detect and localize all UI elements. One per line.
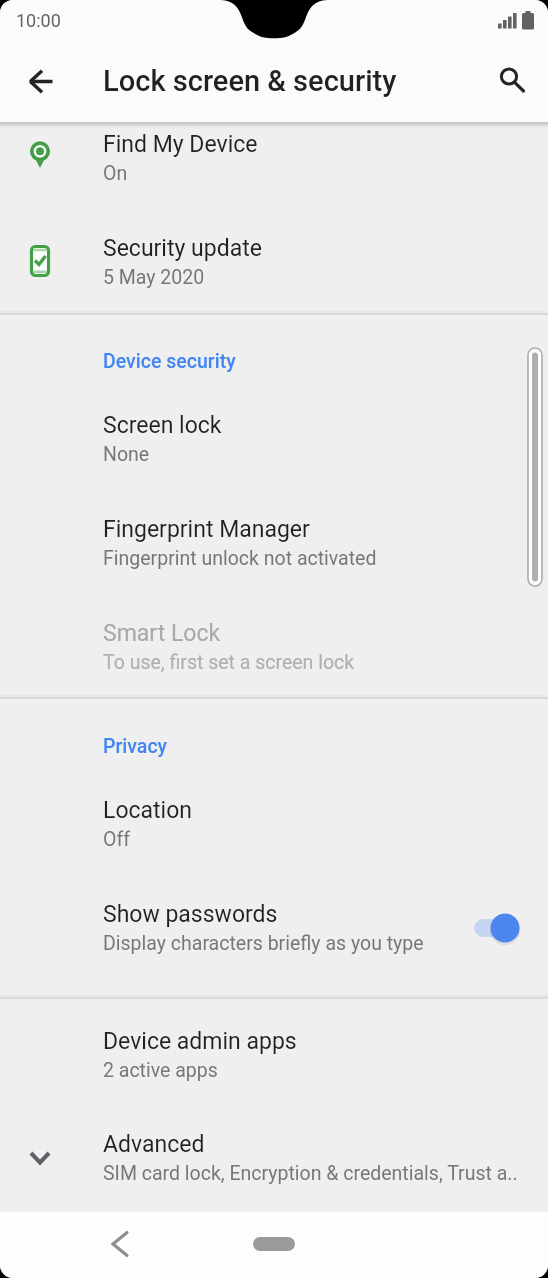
staticText: Device security <box>103 350 236 373</box>
button[interactable]: Find My Device <box>0 92 548 196</box>
staticText: Fingerprint unlock not activated <box>103 547 377 570</box>
button[interactable]: Security update <box>0 196 548 300</box>
staticText: Fingerprint Manager <box>103 516 310 543</box>
staticText: SIM card lock, Encryption & credentials,… <box>103 1162 518 1185</box>
button[interactable] <box>88 1214 152 1274</box>
staticText: None <box>103 443 150 466</box>
staticText: Advanced <box>103 1131 205 1158</box>
staticText: Security update <box>103 235 262 262</box>
staticText: Show passwords <box>103 901 278 928</box>
staticText: Device admin apps <box>103 1028 297 1055</box>
staticText: Lock screen & security <box>103 64 397 98</box>
staticText: Privacy <box>103 735 168 758</box>
staticText: 2 active apps <box>103 1059 218 1082</box>
button[interactable] <box>490 58 534 102</box>
button[interactable]: Location <box>0 758 548 862</box>
button[interactable]: Advanced <box>0 1092 548 1196</box>
button[interactable]: Device admin apps <box>0 989 548 1093</box>
staticText: On <box>103 162 128 185</box>
button[interactable] <box>466 906 528 950</box>
staticText: 10:00 <box>16 10 61 31</box>
staticText: To use, first set a screen lock <box>103 651 355 674</box>
staticText: Find My Device <box>103 131 258 158</box>
button[interactable]: Smart Lock <box>0 581 548 685</box>
button[interactable] <box>244 1222 304 1266</box>
staticText: Screen lock <box>103 412 222 439</box>
staticText: Display characters briefly as you type <box>103 932 424 955</box>
button[interactable]: Screen lock <box>0 373 548 477</box>
staticText: Off <box>103 828 130 851</box>
staticText: Location <box>103 797 192 824</box>
button[interactable]: Show passwords <box>0 862 548 966</box>
button[interactable]: Fingerprint Manager <box>0 477 548 581</box>
staticText: 5 May 2020 <box>103 266 205 289</box>
button[interactable] <box>18 60 64 104</box>
staticText: Smart Lock <box>103 620 221 647</box>
